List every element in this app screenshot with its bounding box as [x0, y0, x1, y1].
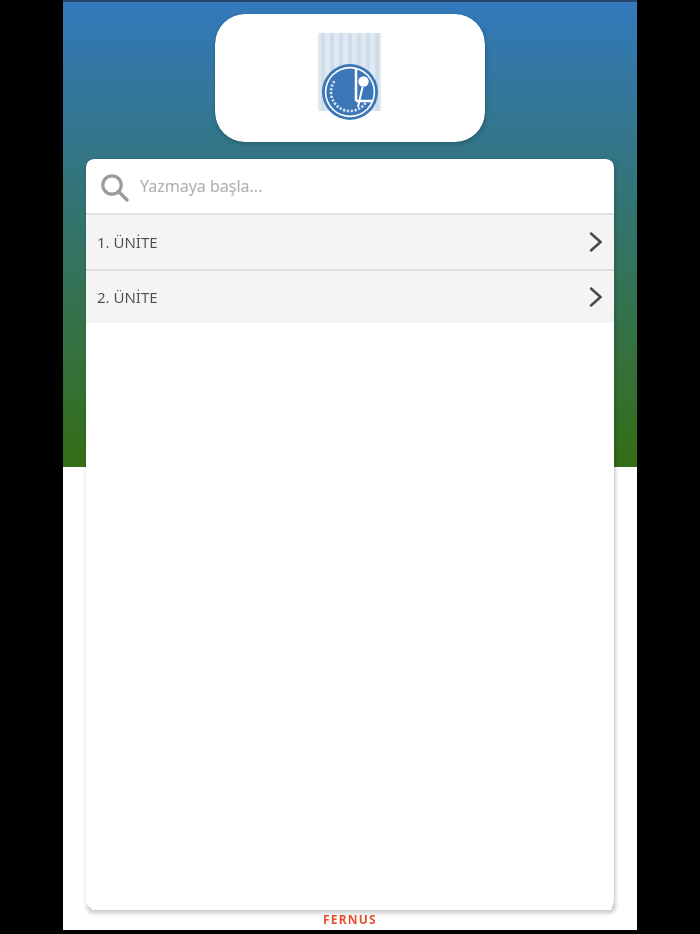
button[interactable]: 1. ÜNİTE [86, 215, 614, 269]
button[interactable]: 2. ÜNİTE [86, 271, 614, 323]
staticText: Yazmaya başla... [140, 175, 263, 197]
staticText: FERNUS [323, 911, 377, 927]
staticText: 1. ÜNİTE [97, 232, 158, 252]
staticText: 2. ÜNİTE [97, 287, 158, 307]
button[interactable]: Yazmaya başla... [86, 159, 614, 213]
